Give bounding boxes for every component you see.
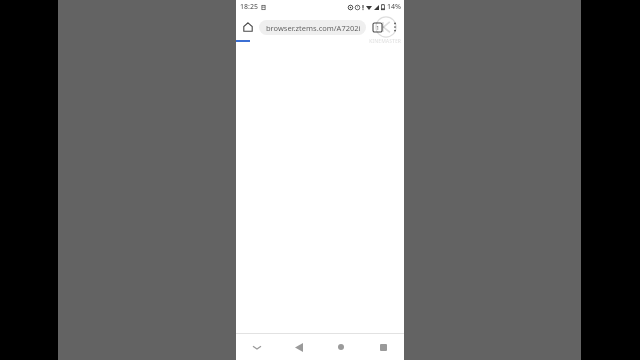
staticText: browser.ztems.com/A7202i [266, 23, 361, 33]
staticText: 14% [387, 2, 401, 12]
staticText: 1 [376, 24, 380, 32]
button[interactable]: Home [320, 334, 362, 360]
button[interactable]: More options [386, 18, 404, 36]
button[interactable]: browser.ztems.com/A7202i [259, 20, 366, 35]
button[interactable]: Recent apps [362, 334, 404, 360]
button[interactable]: Back [278, 334, 320, 360]
staticText: 18:25 [240, 2, 258, 12]
button[interactable]: Hide keyboard [236, 334, 278, 360]
button[interactable]: Tabs [368, 18, 386, 36]
staticText: KINEMASTER [369, 38, 402, 45]
button[interactable]: Home [238, 17, 258, 37]
